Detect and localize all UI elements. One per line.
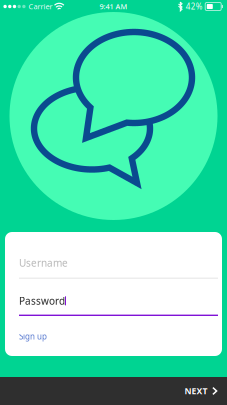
- staticText: Sign up: [19, 331, 47, 342]
- staticText: NEXT: [184, 385, 207, 397]
- button[interactable]: Sign up: [19, 329, 53, 344]
- button[interactable]: Password: [19, 294, 218, 316]
- staticText: 42%: [186, 1, 203, 12]
- staticText: Password: [19, 294, 65, 308]
- staticText: Carrier: [28, 1, 52, 11]
- button[interactable]: Username: [19, 256, 218, 279]
- button[interactable]: NEXT: [0, 377, 227, 405]
- staticText: 9:41 AM: [99, 1, 127, 11]
- staticText: Username: [19, 256, 68, 270]
